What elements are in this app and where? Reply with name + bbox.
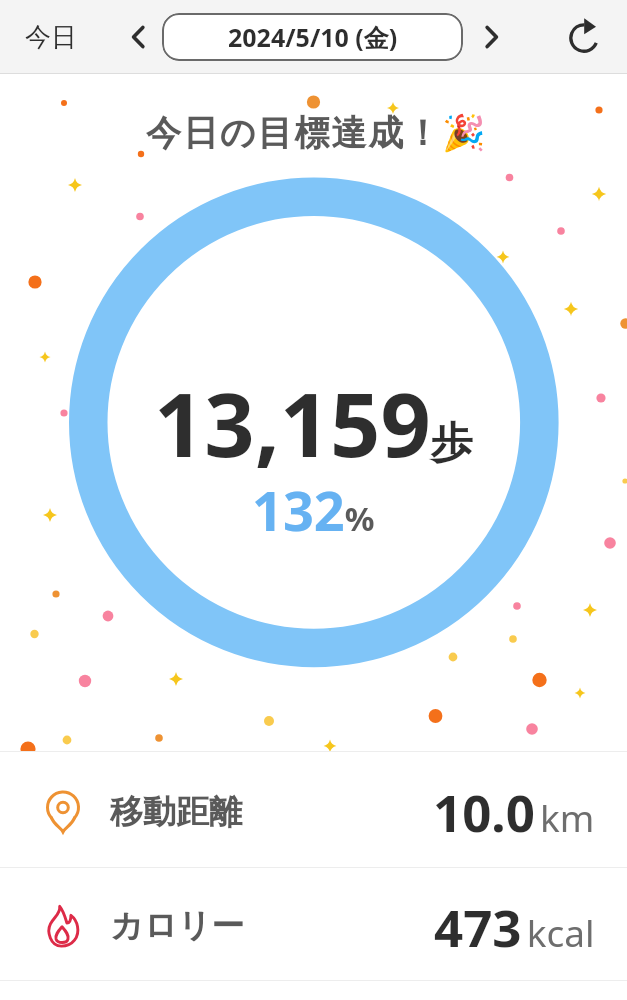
- button[interactable]: Next day: [467, 13, 514, 60]
- staticText: 473 kcal: [434, 892, 595, 961]
- button[interactable]: 今日: [13, 10, 89, 64]
- button[interactable]: Refresh: [555, 7, 615, 67]
- button[interactable]: 移動距離: [0, 752, 627, 867]
- button[interactable]: Previous day: [115, 13, 162, 60]
- button[interactable]: 2024/5/10 (金): [162, 13, 463, 61]
- staticText: 2024/5/10 (金): [228, 20, 398, 54]
- staticText: 132%: [252, 473, 375, 547]
- staticText: 13,159歩: [154, 363, 473, 483]
- staticText: 移動距離: [110, 791, 242, 833]
- staticText: カロリー: [110, 905, 245, 947]
- staticText: 今日: [25, 21, 77, 54]
- staticText: 10.0 km: [433, 777, 595, 846]
- button[interactable]: カロリー: [0, 868, 627, 980]
- staticText: 今日の目標達成！🎉: [146, 111, 488, 155]
